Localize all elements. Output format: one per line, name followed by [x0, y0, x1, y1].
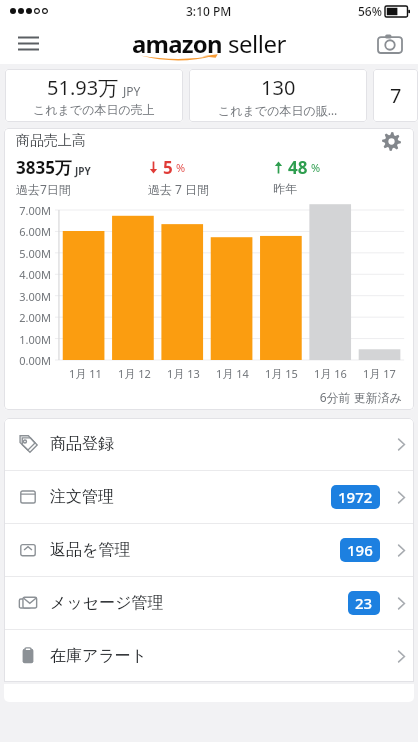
staticText: 商品登録: [50, 434, 388, 454]
staticText: 4.00M: [4, 267, 51, 282]
staticText: 5: [163, 156, 173, 179]
staticText: 過去 7 日間: [148, 181, 210, 197]
staticText: 在庫アラート: [50, 646, 388, 666]
staticText: %: [176, 160, 186, 175]
staticText: 2.00M: [4, 310, 51, 325]
staticText: 商品売上高: [16, 132, 86, 150]
button[interactable]: メッセージ管理: [4, 577, 414, 629]
staticText: 56%: [358, 3, 382, 19]
staticText: 3:10 PM: [186, 3, 232, 19]
staticText: 130: [261, 74, 296, 101]
staticText: amazon: [132, 27, 222, 60]
staticText: seller: [228, 27, 286, 60]
button[interactable]: Menu: [8, 23, 48, 63]
staticText: 0.00M: [4, 353, 51, 368]
staticText: 過去7日間: [16, 181, 71, 197]
staticText: 返品を管理: [50, 540, 340, 560]
staticText: 1.00M: [4, 332, 51, 347]
button[interactable]: 130: [189, 69, 367, 122]
staticText: 7: [390, 82, 402, 109]
staticText: 6分前 更新済み: [4, 389, 402, 405]
staticText: 1月 16: [314, 366, 347, 381]
staticText: メッセージ管理: [50, 593, 348, 613]
staticText: 3835万: [16, 156, 72, 179]
staticText: 1月 17: [363, 366, 396, 381]
button[interactable]: 在庫アラート: [4, 630, 414, 682]
staticText: 1月 15: [265, 366, 298, 381]
staticText: 23: [355, 593, 373, 613]
staticText: %: [311, 160, 321, 175]
staticText: 1月 14: [216, 366, 249, 381]
staticText: 6.00M: [4, 224, 51, 239]
staticText: 196: [347, 540, 373, 560]
button[interactable]: 商品登録: [4, 418, 414, 470]
staticText: 注文管理: [50, 487, 331, 507]
staticText: 5.00M: [4, 246, 51, 261]
staticText: 1月 13: [167, 366, 200, 381]
staticText: JPY: [123, 83, 141, 99]
button[interactable]: 7: [373, 69, 418, 122]
staticText: 1月 12: [118, 366, 151, 381]
button[interactable]: 注文管理: [4, 471, 414, 523]
staticText: 51.93万: [47, 74, 119, 101]
staticText: これまでの本日の売上: [33, 102, 155, 117]
staticText: 1972: [338, 487, 373, 507]
button[interactable]: 51.93万: [5, 69, 183, 122]
staticText: 48: [288, 156, 308, 179]
staticText: JPY: [75, 164, 91, 178]
button[interactable]: 返品を管理: [4, 524, 414, 576]
staticText: 3.00M: [4, 289, 51, 304]
button[interactable]: Camera scan: [370, 23, 410, 63]
button[interactable]: Settings: [376, 128, 406, 154]
staticText: 昨年: [273, 181, 297, 196]
staticText: 1月 11: [69, 366, 102, 381]
staticText: 7.00M: [4, 203, 51, 218]
staticText: これまでの本日の販…: [218, 102, 338, 118]
